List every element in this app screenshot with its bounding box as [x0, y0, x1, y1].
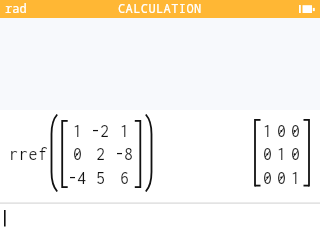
staticText: 1 [291, 169, 300, 188]
staticText: rref [9, 145, 49, 164]
staticText: 0 [277, 169, 286, 188]
staticText: 0 [263, 169, 272, 188]
staticText: -8 [115, 145, 133, 164]
button[interactable] [0, 204, 320, 240]
staticText: 1 [263, 122, 272, 141]
staticText: CALCULATION [118, 0, 202, 16]
staticText: 1 [73, 122, 82, 141]
staticText: 0 [277, 122, 286, 141]
staticText: 0 [291, 145, 300, 164]
staticText: 1 [120, 122, 129, 141]
staticText: 1 [277, 145, 286, 164]
staticText: 0 [73, 145, 82, 164]
staticText: 0 [291, 122, 300, 141]
staticText: 5 [96, 169, 105, 188]
staticText: -4 [68, 169, 86, 188]
staticText: rad [5, 0, 27, 16]
staticText: -2 [91, 122, 109, 141]
button[interactable] [0, 0, 320, 18]
button[interactable] [0, 110, 320, 203]
staticText: 6 [120, 169, 129, 188]
staticText: 2 [96, 145, 105, 164]
staticText: 0 [263, 145, 272, 164]
